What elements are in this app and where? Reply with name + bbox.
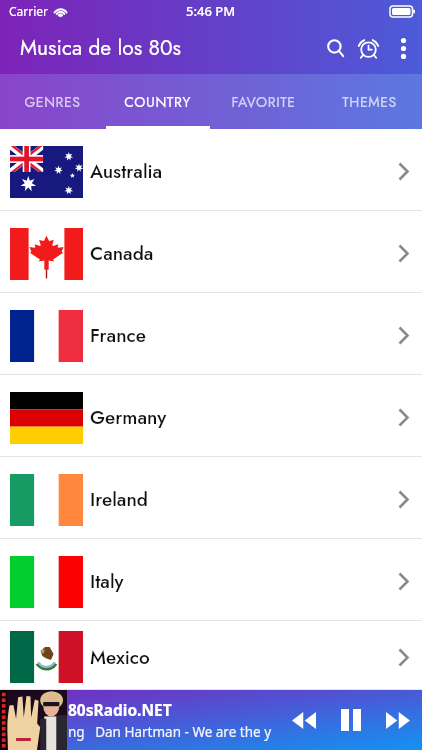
button[interactable]: Italy [0, 539, 422, 621]
staticText: Musica de los 80s [20, 33, 182, 63]
button[interactable]: More options [385, 30, 422, 67]
staticText: Australia [90, 158, 163, 185]
staticText: Ireland [90, 486, 148, 513]
button[interactable]: COUNTRY [105, 74, 210, 129]
staticText: Canada [90, 240, 154, 267]
button[interactable]: Search [310, 31, 344, 65]
staticText: Germany [90, 404, 167, 431]
button[interactable]: Ireland [0, 457, 422, 539]
staticText: 5:46 PM [186, 2, 236, 20]
staticText: Mexico [90, 644, 150, 671]
button[interactable]: Canada [0, 211, 422, 293]
button[interactable]: Germany [0, 375, 422, 457]
staticText: France [90, 322, 146, 349]
staticText: THEMES [342, 92, 397, 112]
staticText: COUNTRY [124, 92, 191, 112]
staticText: Carrier [9, 3, 49, 19]
button[interactable]: Australia [0, 129, 422, 211]
button[interactable]: Pause [334, 703, 368, 737]
button[interactable]: THEMES [316, 74, 422, 129]
button[interactable]: Mexico [0, 621, 422, 690]
staticText: ng Dan Hartman - We are the y [68, 723, 272, 741]
button[interactable]: Next [381, 703, 415, 737]
button[interactable]: France [0, 293, 422, 375]
staticText: GENRES [24, 92, 81, 112]
button[interactable]: GENRES [0, 74, 105, 129]
staticText: 80sRadio.NET [68, 699, 172, 720]
button[interactable]: FAVORITE [210, 74, 316, 129]
staticText: Italy [90, 568, 124, 595]
staticText: FAVORITE [231, 92, 296, 112]
button[interactable]: Previous [287, 703, 321, 737]
button[interactable]: Alarm [351, 31, 385, 65]
